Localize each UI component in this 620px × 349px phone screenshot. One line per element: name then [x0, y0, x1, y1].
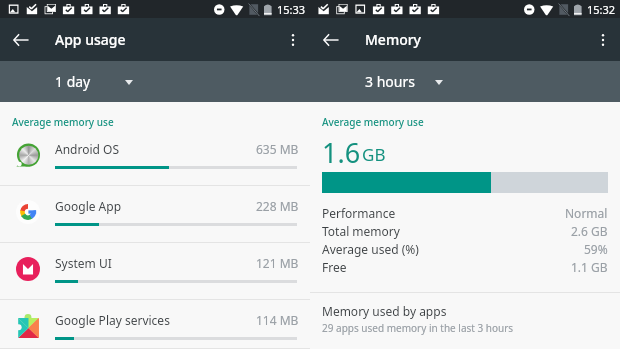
button[interactable]: Google App: [0, 186, 310, 243]
staticText: 2.6 GB: [571, 223, 608, 239]
staticText: GB: [362, 143, 386, 166]
staticText: Normal: [565, 205, 608, 221]
staticText: 1.6: [322, 134, 361, 171]
button[interactable]: Navigate up: [9, 28, 33, 52]
staticText: 114 MB: [256, 312, 299, 328]
staticText: Average memory use: [12, 115, 114, 129]
button[interactable]: Memory used by apps: [310, 293, 620, 335]
staticText: 59%: [584, 241, 608, 257]
staticText: 635 MB: [256, 141, 299, 157]
staticText: Android OS: [55, 141, 119, 157]
staticText: App usage: [55, 30, 126, 49]
button[interactable]: More options: [591, 28, 615, 52]
staticText: 15:33: [277, 2, 306, 17]
button[interactable]: 3 hours: [310, 61, 455, 102]
staticText: Google App: [55, 198, 122, 214]
button[interactable]: Navigate up: [319, 28, 343, 52]
staticText: Performance: [322, 205, 396, 221]
staticText: 1.1 GB: [571, 259, 608, 275]
staticText: 3 hours: [365, 72, 415, 91]
staticText: System UI: [55, 255, 112, 271]
button[interactable]: More options: [281, 28, 305, 52]
button[interactable]: 1 day: [0, 61, 145, 102]
button[interactable]: Android OS: [0, 129, 310, 186]
staticText: 15:32: [587, 2, 616, 17]
staticText: 228 MB: [256, 198, 299, 214]
staticText: 1 day: [55, 72, 91, 91]
staticText: Average used (%): [322, 241, 419, 257]
staticText: 121 MB: [256, 255, 299, 271]
button[interactable]: Google Play services: [0, 300, 310, 349]
staticText: Memory: [365, 30, 422, 49]
staticText: 29 apps used memory in the last 3 hours: [322, 321, 514, 335]
staticText: Total memory: [322, 223, 400, 239]
staticText: Free: [322, 259, 347, 275]
staticText: Google Play services: [55, 312, 170, 328]
staticText: Memory used by apps: [322, 303, 447, 319]
staticText: Average memory use: [322, 115, 424, 129]
button[interactable]: System UI: [0, 243, 310, 300]
